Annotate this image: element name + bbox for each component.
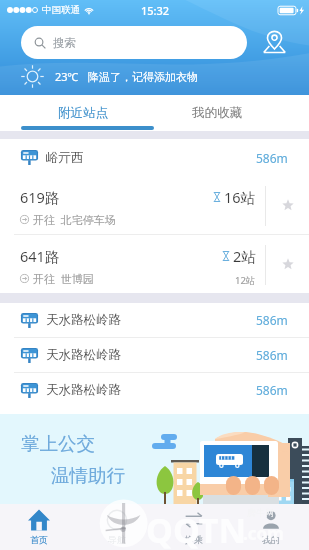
staticText: 16站: [224, 187, 256, 207]
staticText: 我的: [262, 534, 280, 545]
button[interactable]: 天水路松岭路: [0, 303, 309, 337]
staticText: 15:32: [141, 3, 170, 18]
staticText: 搜索: [53, 36, 76, 50]
staticText: 首页: [30, 534, 48, 545]
staticText: 中国联通: [42, 4, 80, 16]
staticText: 586m: [256, 382, 288, 398]
button[interactable]: Favorite: [266, 235, 309, 293]
button[interactable]: 天水路松岭路: [0, 373, 309, 407]
staticText: 掌上公交: [21, 432, 95, 455]
staticText: 586m: [256, 347, 288, 363]
staticText: 我的收藏: [192, 105, 243, 121]
staticText: 开往 世博园: [33, 271, 94, 286]
button[interactable]: 换乘: [155, 504, 232, 550]
staticText: QQTN: [146, 507, 247, 550]
button[interactable]: Map: [252, 26, 296, 59]
staticText: 586m: [256, 150, 288, 166]
staticText: 天水路松岭路: [46, 382, 121, 398]
button[interactable]: 搜索: [21, 26, 247, 59]
staticText: 12站: [235, 274, 256, 287]
button[interactable]: 掌上公交: [0, 414, 309, 504]
button[interactable]: 峪亓西: [0, 139, 309, 176]
staticText: 2站: [233, 246, 256, 266]
button[interactable]: 619路: [0, 176, 309, 234]
staticText: 导航: [108, 534, 126, 545]
button[interactable]: 导航: [78, 504, 155, 550]
staticText: 开往 北宅停车场: [33, 212, 116, 227]
staticText: 峪亓西: [46, 150, 84, 166]
button[interactable]: 641路: [0, 235, 309, 293]
staticText: 619路: [20, 187, 60, 207]
button[interactable]: 天水路松岭路: [0, 338, 309, 372]
staticText: 23℃: [55, 69, 79, 84]
button[interactable]: 我的: [232, 504, 309, 550]
staticText: 降温了，记得添加衣物: [88, 70, 198, 84]
staticText: 腾牛网: [247, 507, 274, 518]
staticText: 换乘: [185, 534, 203, 545]
button[interactable]: 首页: [0, 504, 78, 550]
staticText: 天水路松岭路: [46, 347, 121, 363]
button[interactable]: 我的收藏: [150, 95, 284, 131]
staticText: 641路: [20, 246, 60, 266]
staticText: .com: [243, 522, 284, 545]
staticText: 温情助行: [51, 464, 125, 487]
button[interactable]: Favorite: [266, 176, 309, 234]
staticText: 586m: [256, 312, 288, 328]
button[interactable]: 附近站点: [17, 95, 150, 131]
staticText: 附近站点: [58, 105, 109, 121]
staticText: 天水路松岭路: [46, 312, 121, 328]
